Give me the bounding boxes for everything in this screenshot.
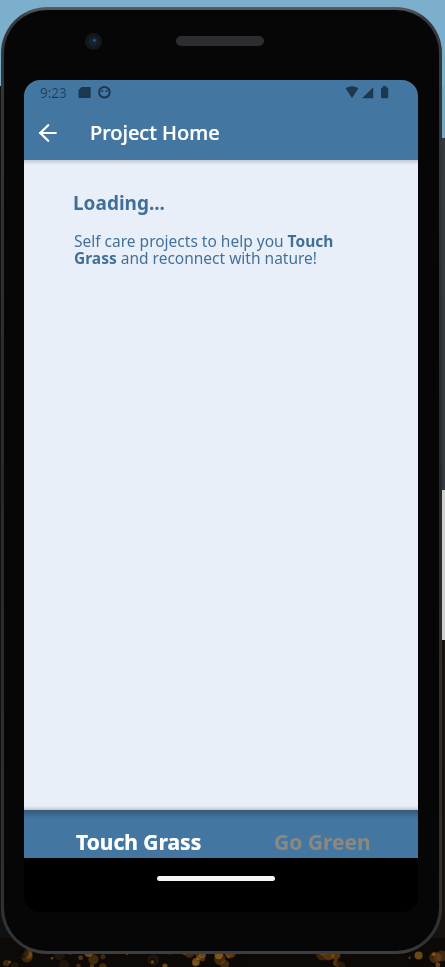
- staticText: Touch Grass: [76, 828, 202, 857]
- staticText: Go Green: [274, 828, 371, 857]
- staticText: 9:23: [40, 84, 67, 102]
- staticText: Self care projects to help you Touch Gra…: [74, 230, 350, 269]
- button[interactable]: [30, 115, 68, 151]
- staticText: Loading...: [73, 190, 165, 216]
- staticText: Project Home: [90, 119, 220, 146]
- button[interactable]: Touch Grass: [62, 822, 216, 863]
- button[interactable]: Go Green: [260, 822, 385, 863]
